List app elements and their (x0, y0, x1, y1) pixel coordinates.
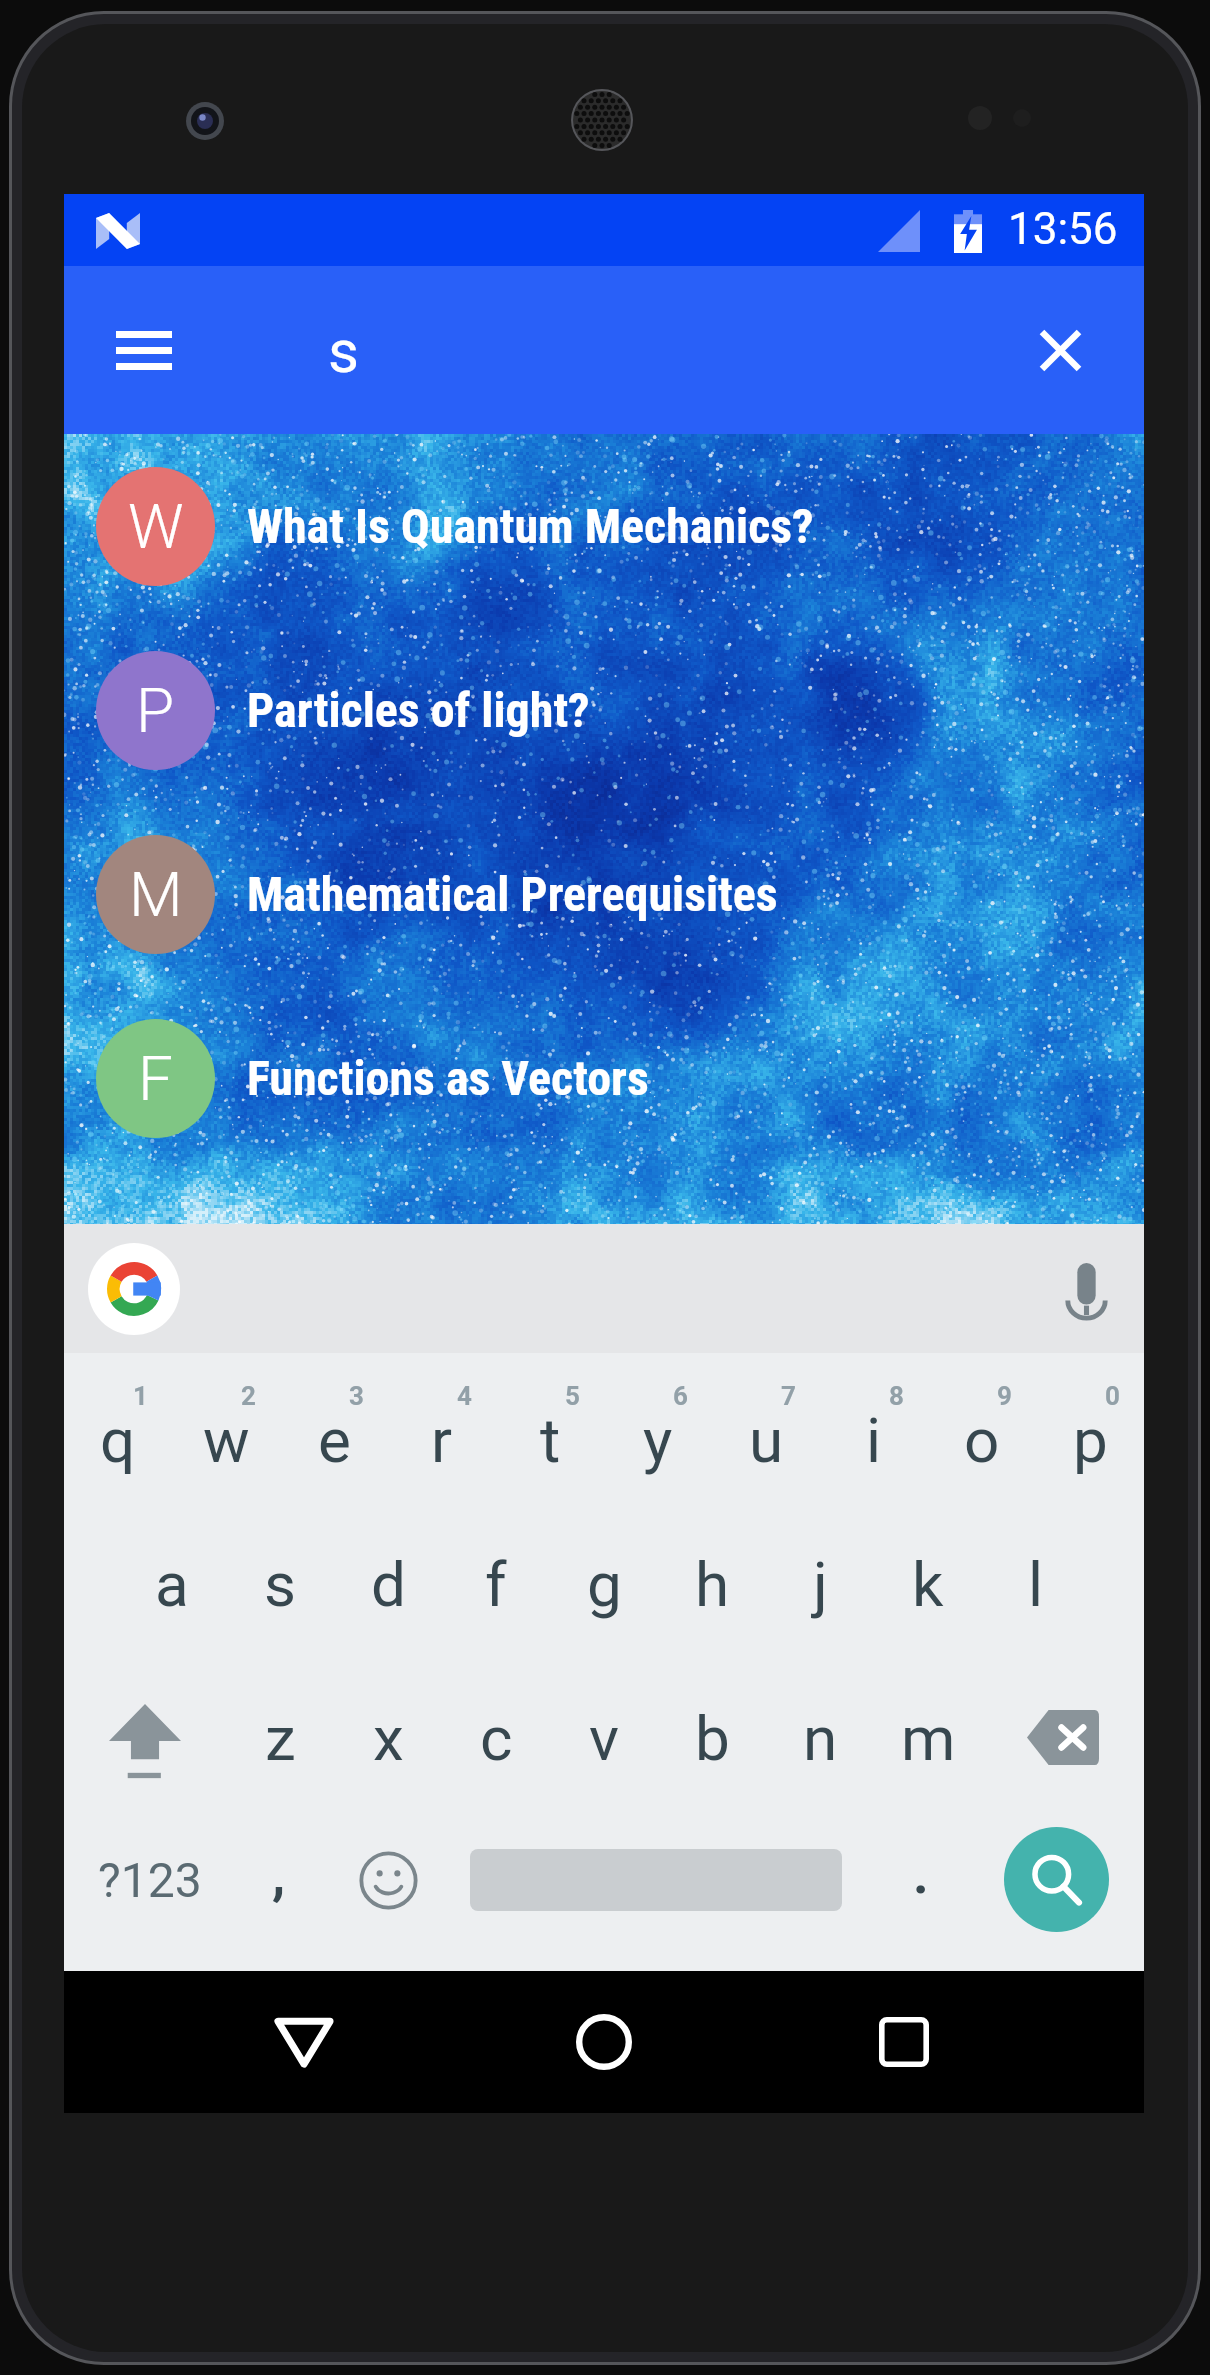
staticText: P (136, 674, 175, 747)
staticText: Functions as Vectors (247, 1050, 649, 1106)
button[interactable]: 3 (280, 1353, 388, 1507)
button[interactable]: 6 (604, 1353, 712, 1507)
staticText: 6 (673, 1381, 688, 1411)
button[interactable]: 2 (172, 1353, 280, 1507)
staticText: j (813, 1548, 828, 1621)
staticText: e (318, 1404, 351, 1477)
staticText: . (913, 1843, 929, 1906)
staticText: k (912, 1548, 944, 1621)
button[interactable]: k (874, 1507, 982, 1661)
staticText: 2 (241, 1381, 256, 1411)
button[interactable]: P (64, 618, 1144, 802)
staticText: t (540, 1404, 561, 1477)
button[interactable]: M (64, 802, 1144, 986)
button[interactable]: Shift (64, 1661, 226, 1815)
staticText: 8 (889, 1381, 904, 1411)
button[interactable]: 9 (928, 1353, 1036, 1507)
button[interactable]: s (226, 1507, 334, 1661)
staticText: v (589, 1702, 620, 1775)
staticText: x (373, 1702, 404, 1775)
staticText: s (264, 1548, 296, 1621)
button[interactable]: Recent apps (844, 1982, 964, 2102)
staticText: 13:56 (1008, 203, 1118, 255)
button[interactable]: 0 (1036, 1353, 1144, 1507)
button[interactable]: Voice input (1040, 1243, 1132, 1335)
button[interactable]: j (766, 1507, 874, 1661)
button[interactable]: . (867, 1815, 975, 1965)
button[interactable]: 1 (64, 1353, 172, 1507)
staticText: m (901, 1702, 956, 1775)
button[interactable]: d (334, 1507, 442, 1661)
staticText: ?123 (98, 1852, 202, 1908)
staticText: , (272, 1843, 286, 1906)
staticText: n (803, 1702, 838, 1775)
button[interactable]: 8 (820, 1353, 928, 1507)
staticText: 3 (349, 1381, 364, 1411)
staticText: W (128, 490, 184, 563)
staticText: y (643, 1404, 673, 1477)
button[interactable]: F (64, 986, 1144, 1170)
staticText: Particles of light? (247, 682, 590, 738)
staticText: d (371, 1548, 406, 1621)
button[interactable]: Delete (982, 1661, 1144, 1815)
staticText: o (964, 1404, 1000, 1477)
button[interactable]: Space (444, 1815, 874, 1965)
button[interactable]: 5 (496, 1353, 604, 1507)
button[interactable]: g (550, 1507, 658, 1661)
button[interactable]: n (766, 1661, 874, 1815)
button[interactable]: W (64, 434, 1144, 618)
staticText: l (1028, 1548, 1044, 1621)
button[interactable]: Back (244, 1982, 364, 2102)
staticText: a (155, 1548, 189, 1621)
staticText: 1 (133, 1381, 148, 1411)
button[interactable]: z (226, 1661, 334, 1815)
button[interactable]: ?123 (74, 1815, 226, 1965)
button[interactable]: Home (544, 1982, 664, 2102)
button[interactable]: h (658, 1507, 766, 1661)
staticText: F (138, 1042, 173, 1115)
button[interactable]: Emoji (334, 1815, 442, 1965)
staticText: s (328, 316, 359, 386)
button[interactable]: Google Assistant (88, 1243, 180, 1335)
staticText: 0 (1105, 1381, 1120, 1411)
staticText: 4 (457, 1381, 472, 1411)
button[interactable]: x (334, 1661, 442, 1815)
button[interactable]: f (442, 1507, 550, 1661)
staticText: Mathematical Prerequisites (247, 866, 778, 922)
staticText: q (100, 1404, 136, 1477)
button[interactable]: l (982, 1507, 1090, 1661)
button[interactable]: m (874, 1661, 982, 1815)
staticText: 9 (997, 1381, 1012, 1411)
staticText: u (749, 1404, 784, 1477)
staticText: z (265, 1702, 296, 1775)
button[interactable]: , (225, 1815, 333, 1965)
staticText: 7 (781, 1381, 796, 1411)
staticText: b (695, 1702, 730, 1775)
staticText: c (480, 1702, 513, 1775)
button[interactable]: b (658, 1661, 766, 1815)
staticText: w (203, 1404, 250, 1477)
staticText: What Is Quantum Mechanics? (247, 498, 814, 554)
button[interactable]: v (550, 1661, 658, 1815)
staticText: 5 (565, 1381, 580, 1411)
button[interactable]: Close search (1004, 294, 1116, 406)
button[interactable]: Open navigation menu (88, 294, 200, 406)
staticText: g (587, 1548, 622, 1621)
staticText: i (866, 1404, 882, 1477)
staticText: r (431, 1404, 453, 1477)
staticText: h (695, 1548, 730, 1621)
button[interactable]: 4 (388, 1353, 496, 1507)
staticText: f (485, 1548, 507, 1621)
button[interactable]: 7 (712, 1353, 820, 1507)
button[interactable]: a (118, 1507, 226, 1661)
button[interactable]: c (442, 1661, 550, 1815)
button[interactable]: Search (1004, 1827, 1109, 1932)
staticText: M (129, 858, 183, 931)
staticText: p (1073, 1404, 1108, 1477)
